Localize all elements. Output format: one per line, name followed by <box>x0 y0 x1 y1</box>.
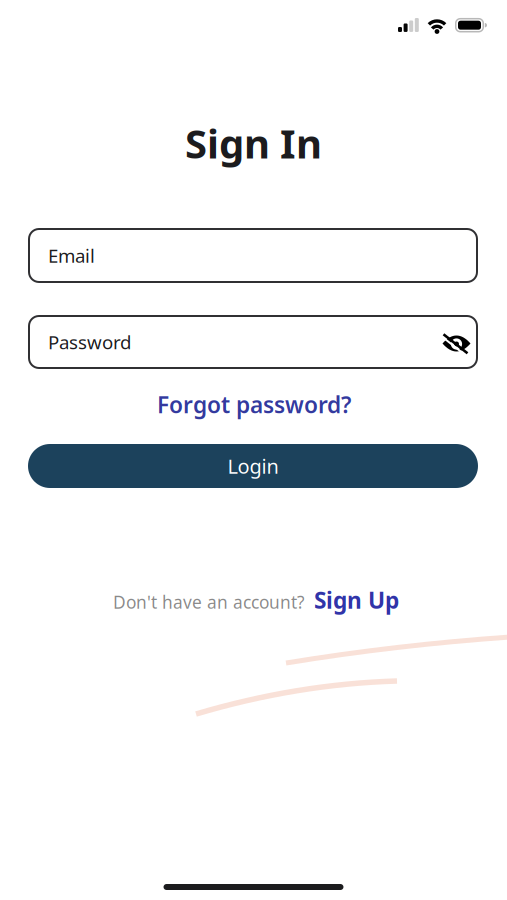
button[interactable]: Login <box>28 444 478 488</box>
button[interactable] <box>442 332 471 352</box>
staticText: Login <box>227 453 278 479</box>
staticText: Sign In <box>185 116 322 169</box>
staticText: Don't have an account? <box>113 591 305 614</box>
staticText: Forgot password? <box>157 389 351 419</box>
button[interactable]: Password <box>28 315 478 369</box>
button[interactable]: Email <box>28 228 478 283</box>
button[interactable]: Sign Up <box>314 585 399 615</box>
button[interactable]: Forgot password? <box>157 389 351 419</box>
staticText: Sign Up <box>314 585 399 615</box>
staticText: Email <box>48 243 95 268</box>
staticText: Password <box>48 330 131 354</box>
